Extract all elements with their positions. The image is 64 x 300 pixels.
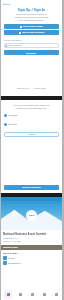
staticText: Quick Checks	[3, 252, 18, 255]
button[interactable]: Leaderboard	[3, 261, 60, 265]
button[interactable]: Home	[1, 289, 14, 300]
button[interactable]: Sign in with Facebook	[4, 30, 59, 35]
staticText: Washington, D.C.	[3, 237, 19, 240]
button[interactable]: Profile	[50, 289, 62, 300]
button[interactable]: Exhibitor	[4, 123, 59, 126]
button[interactable]: Events	[14, 289, 26, 300]
staticText: NBES	[29, 214, 35, 217]
staticText: Or use your email	[4, 39, 22, 42]
button[interactable]: Other	[4, 132, 59, 137]
button[interactable]: Map	[26, 289, 38, 300]
staticText: What is your background? Select the opti…	[4, 104, 59, 110]
button[interactable]: Continue	[4, 50, 59, 55]
button[interactable]: Confirm selection	[4, 185, 59, 190]
staticText: Exhibitor	[8, 123, 18, 126]
button[interactable]: Attendee	[4, 114, 59, 117]
button[interactable]: Email address	[5, 43, 58, 48]
staticText: Create an account or sign in to register…	[4, 13, 59, 22]
staticText: Continue	[26, 51, 37, 54]
button[interactable]: Chat	[38, 289, 50, 300]
staticText: Sign in with Google	[23, 25, 43, 28]
button[interactable]: Terms of Use	[17, 87, 29, 90]
staticText: Sign in with Facebook	[22, 31, 45, 34]
button[interactable]: Privacy Policy	[34, 87, 46, 90]
staticText: Attendee	[8, 114, 18, 117]
button[interactable]: Photos	[3, 256, 60, 260]
staticText: Sign Up / Sign In	[1, 7, 62, 12]
staticText: Other	[29, 133, 35, 136]
staticText: August 20 - 24, 2024	[3, 240, 22, 243]
staticText: Photos	[8, 257, 15, 260]
staticText: Back	[5, 2, 11, 5]
staticText: Confirm selection	[22, 186, 41, 189]
staticText: Business Policy	[3, 246, 18, 249]
button[interactable]: Sign in with Google	[4, 24, 59, 29]
staticText: Leaderboard	[8, 262, 21, 265]
button[interactable]: Back	[3, 2, 11, 5]
staticText: Email address	[8, 44, 22, 47]
staticText: National Business Event Summit	[3, 232, 47, 236]
